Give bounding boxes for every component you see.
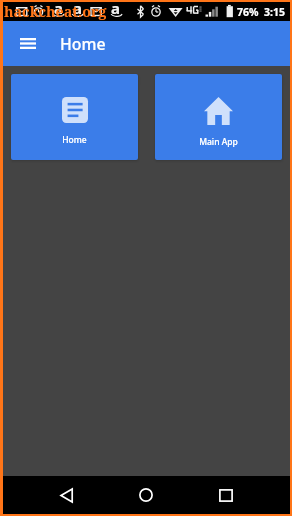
button[interactable]: Home [11, 74, 138, 160]
button[interactable]: Main App [155, 74, 282, 160]
staticText: a [73, 0, 82, 17]
button[interactable]: Open navigation menu [3, 21, 53, 66]
staticText: Main App [199, 136, 238, 148]
button[interactable]: Back [27, 476, 106, 514]
button[interactable]: Recent apps [186, 476, 266, 514]
staticText: a [54, 0, 63, 17]
staticText: 76% [237, 5, 259, 19]
staticText: a [111, 0, 120, 17]
staticText: Home [60, 33, 106, 55]
staticText: 3:15 [264, 5, 285, 19]
staticText: Home [62, 134, 87, 146]
staticText: hackcheat.org [4, 2, 107, 21]
button[interactable]: Home [106, 476, 186, 514]
